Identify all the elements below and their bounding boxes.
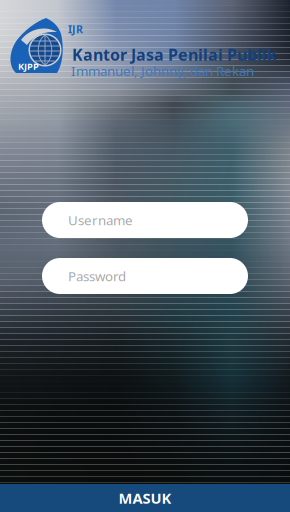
staticText: Username: [68, 211, 133, 229]
button[interactable]: Username: [42, 202, 248, 238]
staticText: KJPP: [18, 60, 39, 72]
staticText: Immanuel, Johnny, dan Rekan: [71, 62, 254, 80]
staticText: IJR: [68, 22, 83, 36]
staticText: Kantor Jasa Penilai Publik: [72, 44, 277, 65]
staticText: MASUK: [118, 488, 171, 508]
button[interactable]: Password: [42, 258, 248, 294]
button[interactable]: MASUK: [0, 484, 290, 512]
staticText: Password: [68, 267, 126, 285]
